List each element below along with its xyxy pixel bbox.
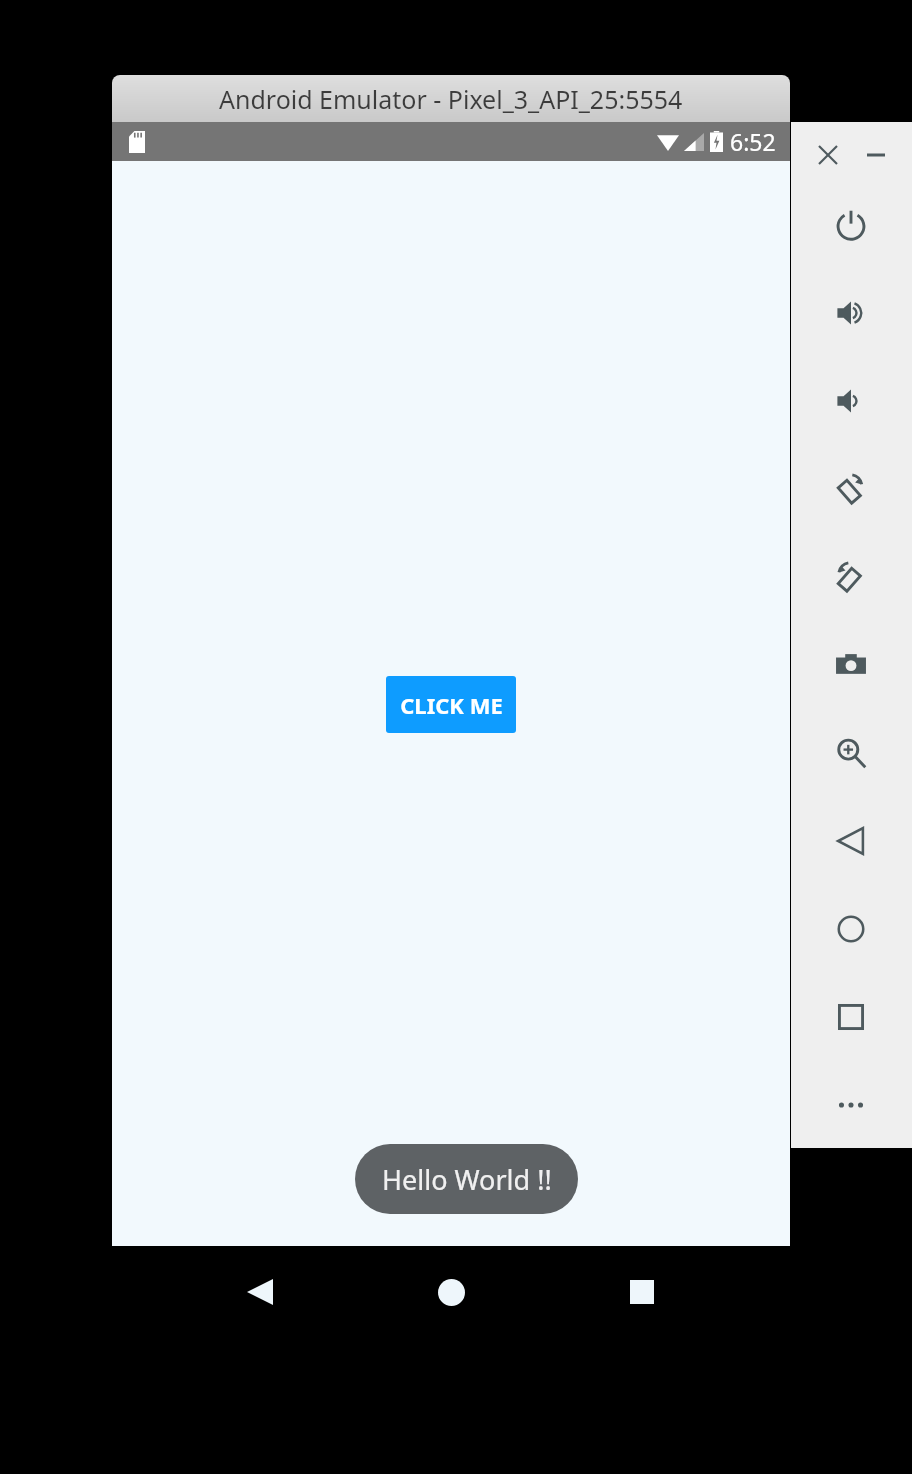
button[interactable]: More [820,1074,882,1136]
button[interactable]: Back [226,1258,294,1326]
button[interactable]: Recent apps [608,1258,676,1326]
staticText: CLICK ME [400,690,503,720]
staticText: Android Emulator - Pixel_3_API_25:5554 [219,82,683,116]
button[interactable]: Home [820,898,882,960]
button[interactable]: Volume down [820,370,882,432]
button[interactable]: Overview [820,986,882,1048]
button[interactable]: Rotate left [820,458,882,520]
button[interactable]: Back [820,810,882,872]
button[interactable]: Take screenshot [820,634,882,696]
staticText: Hello World !! [382,1161,552,1198]
button[interactable]: Power [820,194,882,256]
staticText: 6:52 [730,126,776,157]
button[interactable]: Close [811,138,845,172]
button[interactable]: Rotate right [820,546,882,608]
button[interactable]: Volume up [820,282,882,344]
button[interactable]: Minimize [859,138,893,172]
button[interactable]: CLICK ME [386,676,516,733]
button[interactable]: Home [417,1258,485,1326]
button[interactable]: Zoom [820,722,882,784]
